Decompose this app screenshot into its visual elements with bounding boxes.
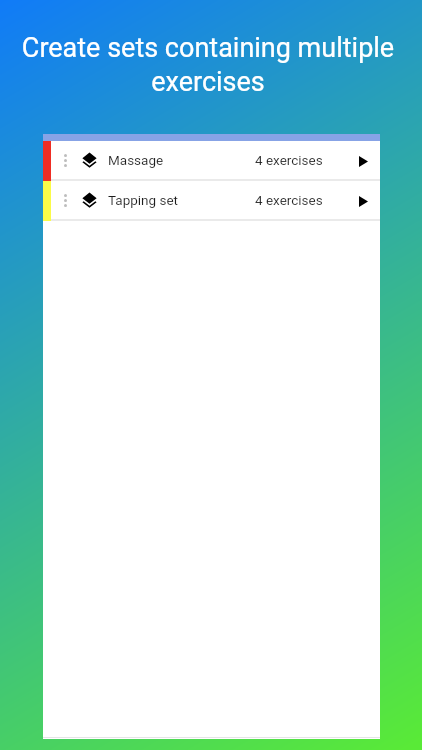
other: Reorder Massage (64, 154, 67, 167)
staticText: 4 exercises (255, 192, 323, 208)
staticText: Tapping set (108, 192, 179, 208)
other: Reorder Tapping set (64, 194, 67, 207)
button[interactable]: Reorder Tapping set (43, 181, 380, 221)
staticText: Massage (108, 152, 164, 168)
button[interactable]: Open set (351, 189, 375, 213)
button[interactable]: Open set (351, 149, 375, 173)
staticText: 4 exercises (255, 152, 323, 168)
button[interactable]: Reorder Massage (43, 141, 380, 181)
staticText: Create sets containing multiple exercise… (14, 32, 402, 97)
